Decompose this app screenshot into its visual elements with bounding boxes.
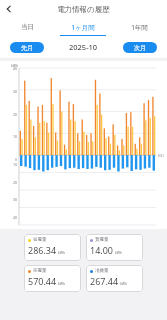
staticText: 30 — [3, 89, 17, 94]
staticText: 売電量 — [33, 268, 47, 274]
staticText: 買電量 — [95, 237, 109, 243]
staticText: 2025-10 — [69, 42, 98, 52]
staticText: kWh — [120, 281, 128, 286]
staticText: kWh — [58, 281, 66, 286]
button[interactable]: Back — [0, 0, 18, 18]
staticText: 14.00 — [90, 244, 114, 256]
staticText: 570.44 — [28, 275, 57, 287]
button[interactable]: 1ヶ月間 — [55, 18, 111, 36]
staticText: 先月 — [21, 44, 33, 52]
staticText: 30 — [3, 197, 17, 202]
staticText: kWh — [115, 250, 123, 255]
staticText: 286.34 — [28, 244, 57, 256]
button[interactable]: 1年間 — [111, 18, 167, 36]
button[interactable]: 次月 — [123, 42, 157, 53]
button[interactable]: 買電量 — [86, 234, 143, 261]
staticText: 20 — [3, 180, 17, 185]
staticText: 1年間 — [131, 23, 148, 32]
staticText: 10 — [3, 134, 17, 139]
staticText: (日) — [158, 153, 164, 158]
staticText: 267.44 — [90, 275, 119, 287]
staticText: 発電量 — [33, 237, 47, 243]
button[interactable]: 消費量 — [86, 265, 143, 292]
staticText: 10 — [3, 162, 17, 167]
staticText: kWh — [58, 250, 66, 255]
staticText: 1ヶ月間 — [71, 23, 95, 32]
staticText: 0 — [3, 157, 17, 162]
staticText: 次月 — [134, 44, 146, 52]
button[interactable]: 先月 — [10, 42, 44, 53]
button[interactable]: 発電量 — [24, 234, 81, 261]
staticText: 電力情報の履歴 — [57, 5, 110, 14]
staticText: 20 — [3, 112, 17, 117]
button[interactable]: 売電量 — [24, 265, 81, 292]
staticText: 消費量 — [95, 268, 109, 274]
staticText: 当日 — [21, 23, 34, 31]
staticText: 40 — [3, 66, 17, 71]
staticText: kWh — [11, 63, 19, 68]
button[interactable]: 当日 — [0, 18, 55, 36]
staticText: 40 — [3, 215, 17, 220]
